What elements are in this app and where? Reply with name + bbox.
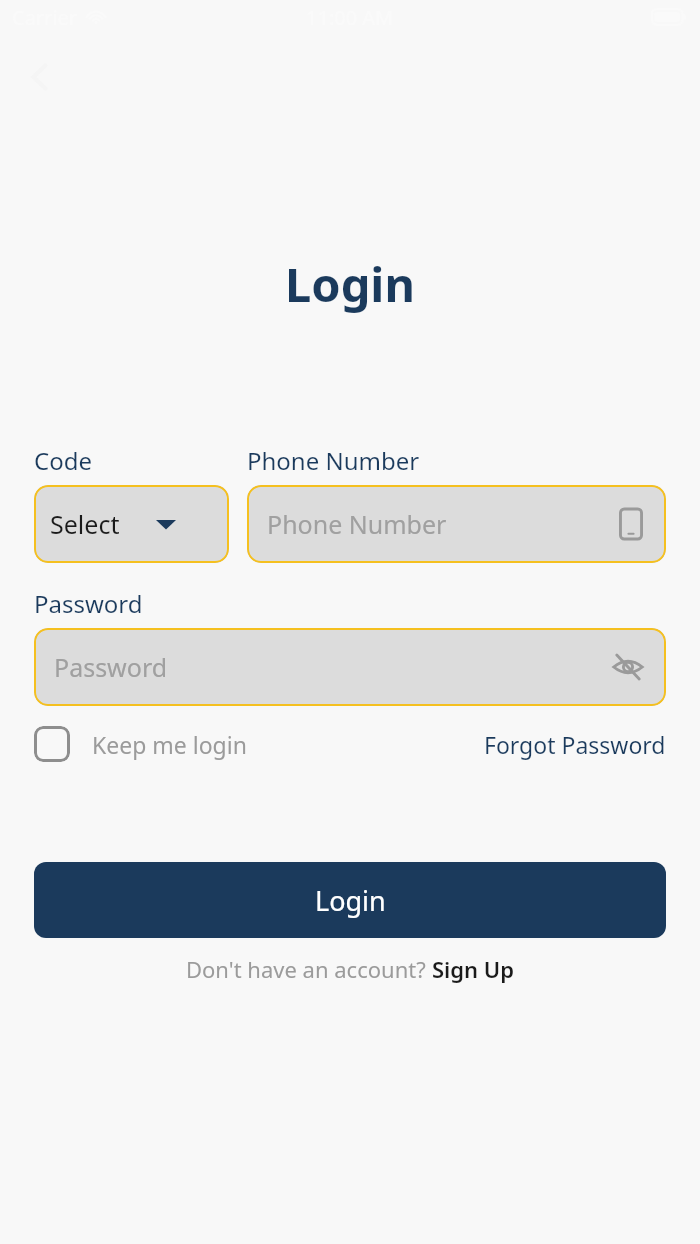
- staticText: Keep me login: [92, 729, 247, 760]
- staticText: Sign Up: [432, 954, 515, 984]
- button[interactable]: Phone Number: [247, 485, 666, 563]
- button[interactable]: Password: [34, 628, 666, 706]
- button[interactable]: Select: [34, 485, 229, 563]
- staticText: Password: [34, 587, 143, 620]
- button[interactable]: Forgot Password: [484, 729, 666, 760]
- staticText: Select: [50, 507, 120, 541]
- button[interactable]: Show password: [608, 647, 648, 687]
- staticText: Login: [315, 882, 386, 919]
- staticText: Password: [54, 650, 168, 684]
- button[interactable]: Sign Up: [432, 954, 515, 984]
- staticText: Phone Number: [267, 507, 447, 541]
- button[interactable]: Keep me login: [34, 726, 247, 762]
- staticText: Login: [0, 252, 700, 316]
- staticText: Code: [34, 444, 92, 477]
- staticText: Forgot Password: [484, 729, 666, 760]
- button[interactable]: Login: [34, 862, 666, 938]
- staticText: Don't have an account?: [186, 954, 432, 984]
- staticText: Phone Number: [247, 444, 420, 477]
